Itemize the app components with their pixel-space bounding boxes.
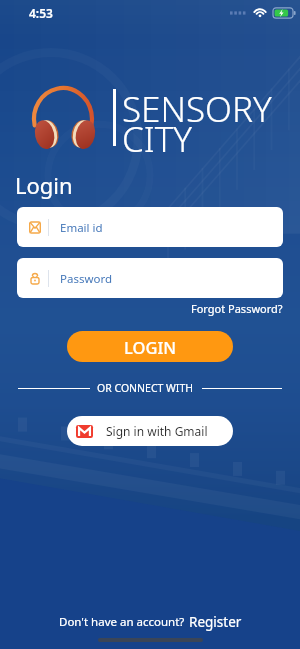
staticText: Password [60, 271, 113, 287]
button[interactable]: Password [17, 258, 283, 298]
staticText: 4:53 [29, 5, 53, 21]
staticText: OR CONNECT WITH [97, 381, 194, 395]
staticText: SENSORY [122, 85, 272, 133]
button[interactable]: LOGIN [67, 331, 233, 362]
staticText: Login [15, 170, 73, 200]
staticText: Sign in with Gmail [106, 423, 208, 439]
staticText: Register [189, 613, 242, 631]
staticText: Don't have an account? [59, 614, 185, 630]
button[interactable]: Register [189, 613, 242, 631]
staticText: CITY [122, 115, 192, 163]
button[interactable]: Forgot Password? [191, 300, 300, 316]
button[interactable]: Email id [17, 207, 283, 247]
staticText: LOGIN [124, 336, 177, 358]
staticText: Email id [60, 220, 103, 236]
staticText: Forgot Password? [191, 301, 283, 316]
button[interactable]: Sign in with Gmail [67, 416, 233, 446]
